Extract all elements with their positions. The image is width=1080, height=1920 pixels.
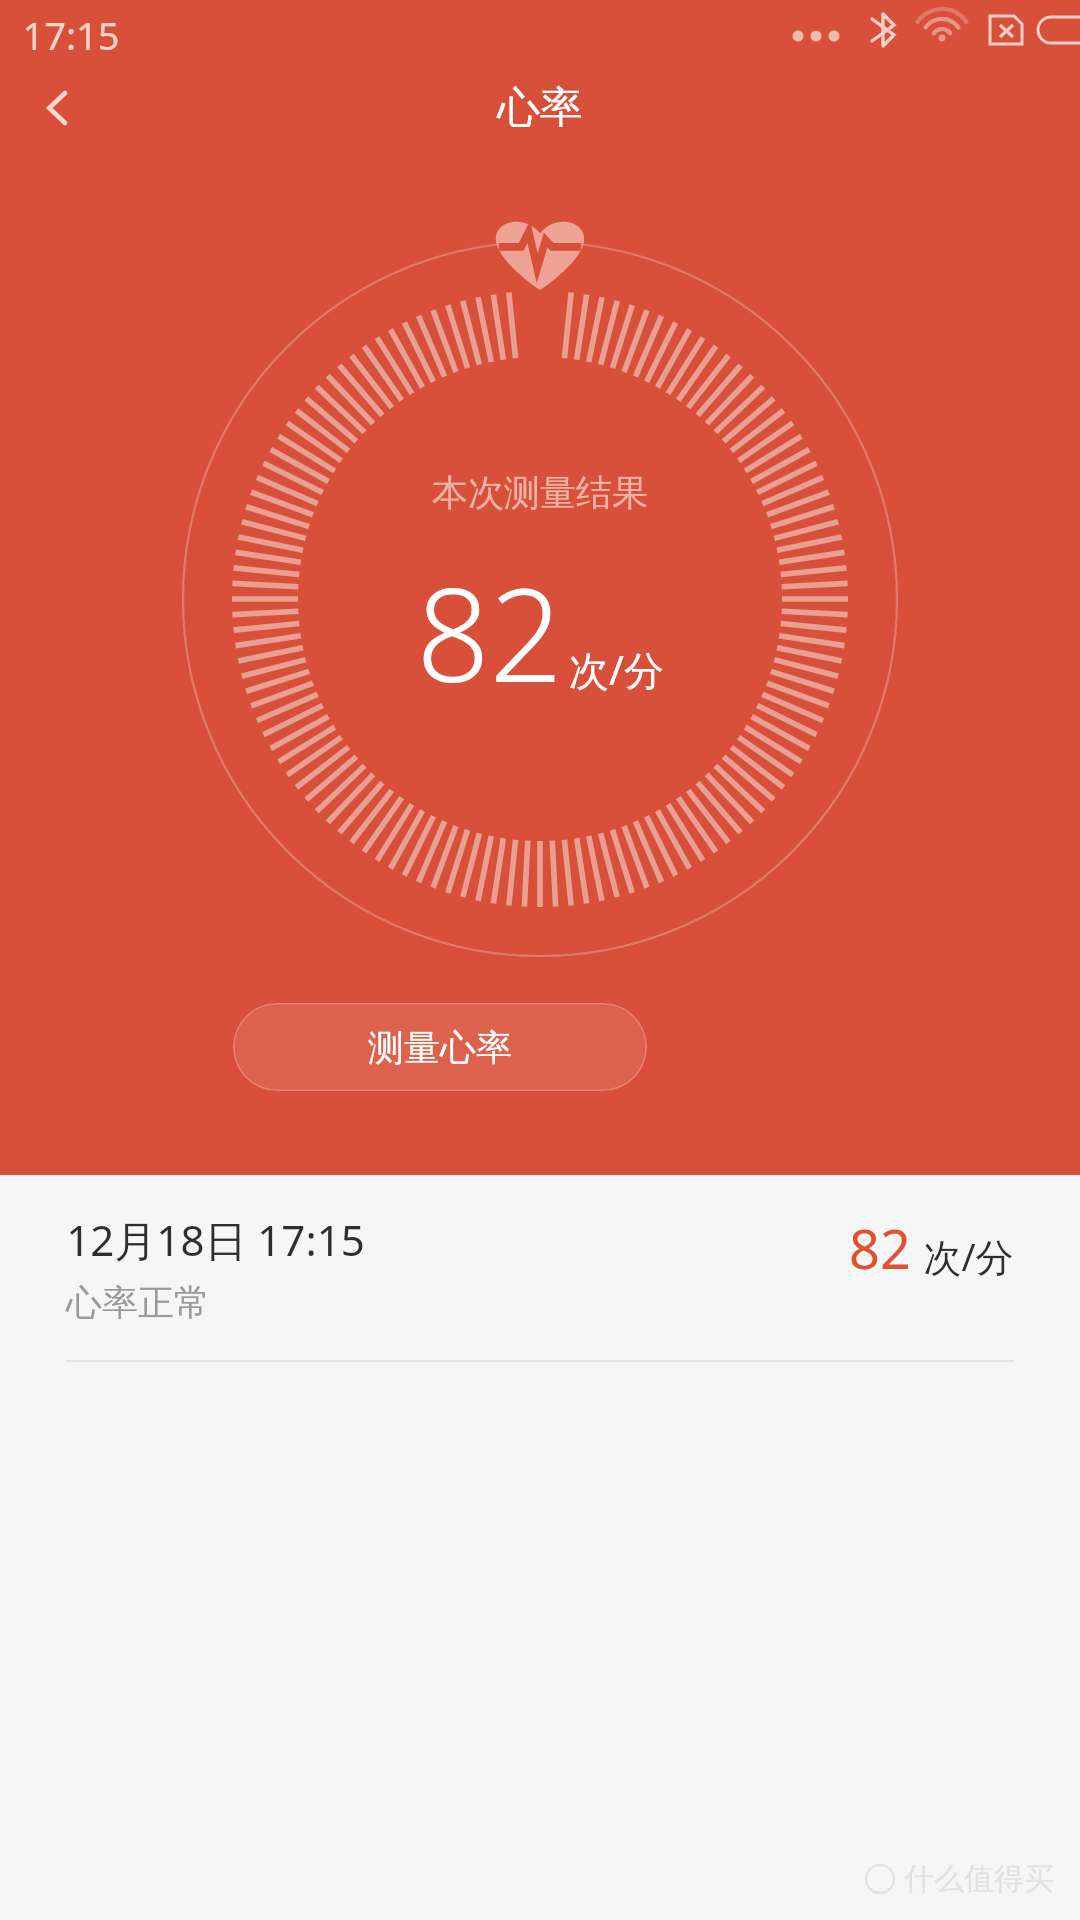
staticText: 本次测量结果 — [432, 470, 648, 515]
button[interactable]: 12月18日 17:15 — [0, 1175, 1080, 1361]
staticText: 测量心率 — [368, 1025, 512, 1070]
staticText: 17:15 — [22, 9, 120, 61]
staticText: 82 — [849, 1211, 911, 1285]
button[interactable]: 测量心率 — [233, 1003, 647, 1091]
staticText: 次/分 — [923, 1230, 1014, 1282]
staticText: 12月18日 17:15 — [66, 1211, 365, 1268]
staticText: 心率正常 — [66, 1280, 210, 1325]
staticText: 次/分 — [569, 642, 664, 697]
staticText: 什么值得买 — [904, 1860, 1054, 1898]
staticText: 心率 — [497, 81, 583, 135]
button[interactable]: Back — [8, 58, 108, 158]
staticText: 82 — [416, 545, 563, 719]
